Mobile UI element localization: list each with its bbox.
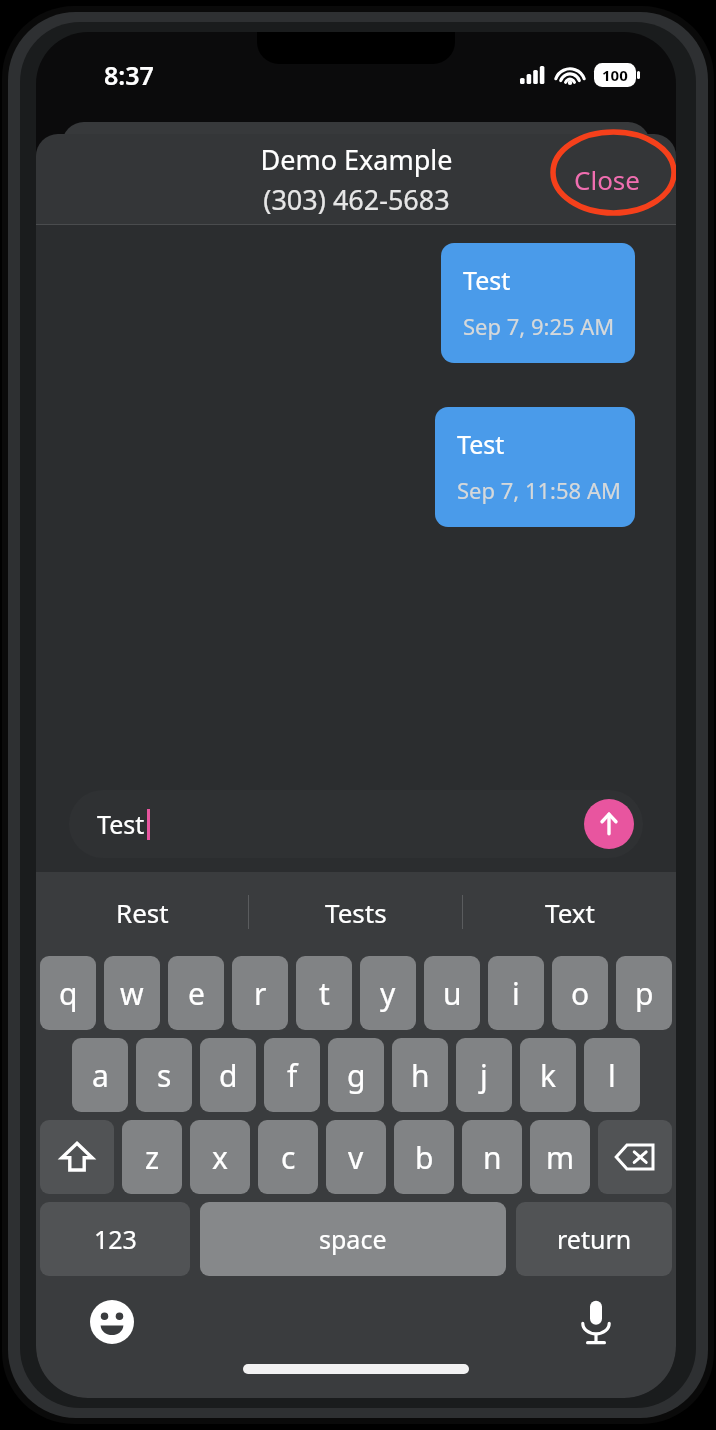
- staticText: Test: [457, 427, 505, 461]
- staticText: o: [571, 973, 590, 1014]
- staticText: n: [483, 1137, 502, 1178]
- staticText: space: [319, 1222, 387, 1256]
- staticText: k: [540, 1055, 557, 1096]
- button[interactable]: b: [394, 1120, 454, 1194]
- staticText: e: [188, 973, 205, 1014]
- button[interactable]: f: [264, 1038, 320, 1112]
- staticText: c: [281, 1137, 296, 1178]
- staticText: Sep 7, 11:58 AM: [457, 475, 621, 505]
- staticText: w: [120, 973, 144, 1014]
- button[interactable]: t: [296, 956, 352, 1030]
- staticText: (303) 462-5683: [263, 181, 450, 218]
- button[interactable]: space: [200, 1202, 506, 1276]
- button[interactable]: o: [552, 956, 608, 1030]
- button[interactable]: 123: [40, 1202, 190, 1276]
- staticText: d: [219, 1055, 238, 1096]
- button[interactable]: q: [40, 956, 96, 1030]
- button[interactable]: Close: [560, 154, 654, 205]
- staticText: Tests: [325, 895, 387, 930]
- button[interactable]: c: [258, 1120, 318, 1194]
- button[interactable]: a: [72, 1038, 128, 1112]
- button[interactable]: z: [122, 1120, 182, 1194]
- button[interactable]: n: [462, 1120, 522, 1194]
- button[interactable]: Rest: [36, 872, 248, 952]
- button[interactable]: Test: [441, 243, 635, 363]
- staticText: Sep 7, 9:25 AM: [463, 311, 615, 341]
- staticText: Close: [574, 162, 640, 197]
- button[interactable]: Send: [584, 799, 634, 849]
- staticText: h: [411, 1055, 430, 1096]
- button[interactable]: m: [530, 1120, 590, 1194]
- staticText: v: [348, 1137, 364, 1178]
- button[interactable]: g: [328, 1038, 384, 1112]
- staticText: return: [557, 1222, 632, 1256]
- button[interactable]: j: [456, 1038, 512, 1112]
- button[interactable]: i: [488, 956, 544, 1030]
- button[interactable]: Dictation: [572, 1298, 620, 1346]
- button[interactable]: r: [232, 956, 288, 1030]
- button[interactable]: Test: [435, 407, 635, 527]
- staticText: y: [380, 973, 396, 1014]
- staticText: 123: [94, 1222, 137, 1256]
- staticText: a: [92, 1055, 109, 1096]
- staticText: f: [287, 1055, 298, 1096]
- button[interactable]: e: [168, 956, 224, 1030]
- button[interactable]: l: [584, 1038, 640, 1112]
- button[interactable]: s: [136, 1038, 192, 1112]
- button[interactable]: d: [200, 1038, 256, 1112]
- staticText: r: [254, 973, 267, 1014]
- staticText: s: [157, 1055, 172, 1096]
- staticText: b: [415, 1137, 434, 1178]
- staticText: q: [59, 973, 78, 1014]
- button[interactable]: Text: [463, 872, 676, 952]
- button[interactable]: Tests: [249, 872, 462, 952]
- staticText: Test: [463, 263, 511, 297]
- button[interactable]: Emoji: [88, 1298, 136, 1346]
- staticText: 100: [602, 65, 628, 85]
- button[interactable]: return: [516, 1202, 672, 1276]
- staticText: m: [546, 1137, 575, 1178]
- staticText: g: [347, 1055, 366, 1096]
- staticText: 8:37: [104, 58, 154, 92]
- staticText: u: [443, 973, 462, 1014]
- button[interactable]: [69, 790, 643, 858]
- staticText: j: [480, 1055, 488, 1096]
- staticText: Test: [97, 807, 145, 841]
- button[interactable]: u: [424, 956, 480, 1030]
- staticText: Text: [545, 895, 595, 930]
- button[interactable]: h: [392, 1038, 448, 1112]
- button[interactable]: k: [520, 1038, 576, 1112]
- staticText: l: [608, 1055, 616, 1096]
- button[interactable]: Backspace: [598, 1120, 672, 1194]
- staticText: x: [212, 1137, 228, 1178]
- button[interactable]: y: [360, 956, 416, 1030]
- button[interactable]: v: [326, 1120, 386, 1194]
- button[interactable]: p: [616, 956, 672, 1030]
- staticText: i: [512, 973, 520, 1014]
- staticText: t: [319, 973, 330, 1014]
- button[interactable]: x: [190, 1120, 250, 1194]
- staticText: Demo Example: [260, 141, 453, 178]
- staticText: Rest: [116, 895, 169, 930]
- staticText: z: [145, 1137, 160, 1178]
- button[interactable]: w: [104, 956, 160, 1030]
- staticText: p: [635, 973, 654, 1014]
- button[interactable]: Shift: [40, 1120, 114, 1194]
